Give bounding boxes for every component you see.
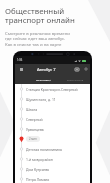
button[interactable]: 1-й микрорайон	[15, 154, 90, 164]
staticText: Урванцева	[26, 127, 44, 132]
button[interactable]: Школа	[15, 104, 90, 114]
staticText: ОСТАНОВКИ	[36, 78, 51, 81]
staticText: Школа	[26, 107, 38, 112]
staticText: 1-й микрорайон	[26, 157, 53, 162]
button[interactable]: Show on map	[73, 66, 80, 73]
button[interactable]: ОСТАНОВКИ	[31, 74, 55, 84]
button[interactable]: Северный	[15, 114, 90, 124]
button[interactable]: More options	[83, 66, 89, 72]
staticText: Автобус 7	[37, 67, 56, 72]
button[interactable]: Урванцева	[15, 124, 90, 134]
button[interactable]: Дом Кутряева	[15, 164, 90, 174]
staticText: Дом Кутряева	[26, 167, 50, 172]
staticText: Смотрите в реальном времени где сейчас е…	[5, 30, 71, 48]
button[interactable]: РАСПИСАНИЕ	[62, 74, 88, 84]
staticText: Станция Красноярск-Северный	[26, 87, 78, 92]
staticText: 2 мин	[29, 137, 37, 141]
staticText: Общественный транспорт онлайн	[5, 6, 75, 25]
staticText: РАСПИСАНИЕ	[67, 78, 84, 81]
button[interactable]: Щукинского, д. 11	[15, 94, 90, 104]
button[interactable]: Детская поликлиника	[15, 144, 90, 154]
staticText: Щукинского, д. 11	[26, 97, 56, 102]
button[interactable]: Станция Красноярск-Северный	[15, 84, 90, 94]
staticText: Детская поликлиника	[26, 147, 62, 152]
staticText: 1:06	[17, 58, 23, 62]
button[interactable]: Open navigation menu	[18, 66, 24, 72]
button[interactable]: Петра Ломако	[15, 174, 90, 183]
button[interactable]: 2 мин	[15, 134, 90, 144]
staticText: Северный	[26, 117, 43, 122]
staticText: Петра Ломако	[26, 177, 50, 182]
